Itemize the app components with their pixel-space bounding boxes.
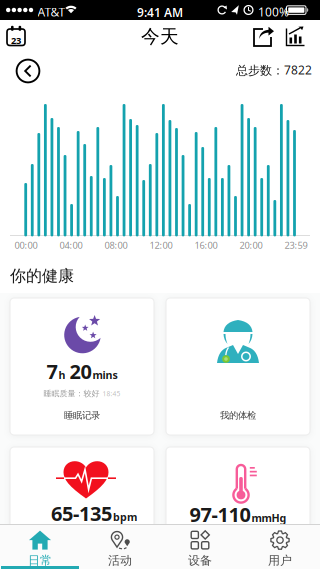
staticText: bpm bbox=[113, 510, 137, 524]
staticText: 20:00 bbox=[239, 239, 262, 251]
button[interactable]: Back bbox=[14, 57, 42, 85]
staticText: 00:00 bbox=[14, 239, 37, 251]
staticText: 今天 bbox=[141, 25, 179, 48]
button[interactable]: 日常 bbox=[0, 524, 80, 569]
button[interactable]: 设备 bbox=[160, 524, 240, 569]
button[interactable]: 97-110 bbox=[166, 447, 310, 569]
button[interactable]: Statistics bbox=[285, 26, 306, 46]
staticText: 12:00 bbox=[149, 239, 172, 251]
staticText: 用户 bbox=[268, 553, 292, 568]
staticText: 你的健康 bbox=[10, 266, 74, 286]
staticText: 16:00 bbox=[194, 239, 217, 251]
staticText: 总步数：7822 bbox=[236, 62, 312, 78]
staticText: 23 bbox=[11, 34, 21, 47]
button[interactable]: Calendar bbox=[5, 25, 31, 51]
button[interactable]: Share bbox=[250, 26, 275, 47]
button[interactable]: 7 bbox=[10, 298, 154, 435]
staticText: 7 bbox=[46, 358, 57, 385]
button[interactable]: 我的体检 bbox=[166, 298, 310, 435]
staticText: h bbox=[58, 368, 68, 382]
staticText: 23:59 bbox=[284, 239, 307, 251]
staticText: 65-135 bbox=[51, 500, 112, 527]
staticText: 04:00 bbox=[59, 239, 82, 251]
staticText: mmHg bbox=[251, 511, 286, 525]
staticText: 20 bbox=[69, 358, 91, 385]
staticText: 日常 bbox=[28, 553, 52, 568]
staticText: 活动 bbox=[108, 553, 132, 568]
staticText: 9:41 AM bbox=[137, 4, 183, 20]
staticText: 睡眠质量：较好 bbox=[43, 389, 99, 398]
staticText: 设备 bbox=[188, 553, 212, 568]
staticText: 97-110 bbox=[189, 501, 250, 528]
button[interactable]: 活动 bbox=[80, 524, 160, 569]
staticText: 08:00 bbox=[104, 239, 127, 251]
staticText: AT&T bbox=[37, 4, 65, 20]
staticText: 100% bbox=[258, 4, 289, 20]
button[interactable]: 用户 bbox=[240, 524, 320, 569]
button[interactable]: 65-135 bbox=[10, 447, 154, 569]
staticText: 18:45 bbox=[102, 389, 120, 398]
staticText: mins bbox=[92, 368, 117, 382]
staticText: 睡眠记录 bbox=[64, 409, 100, 421]
staticText: 我的体检 bbox=[220, 409, 256, 421]
